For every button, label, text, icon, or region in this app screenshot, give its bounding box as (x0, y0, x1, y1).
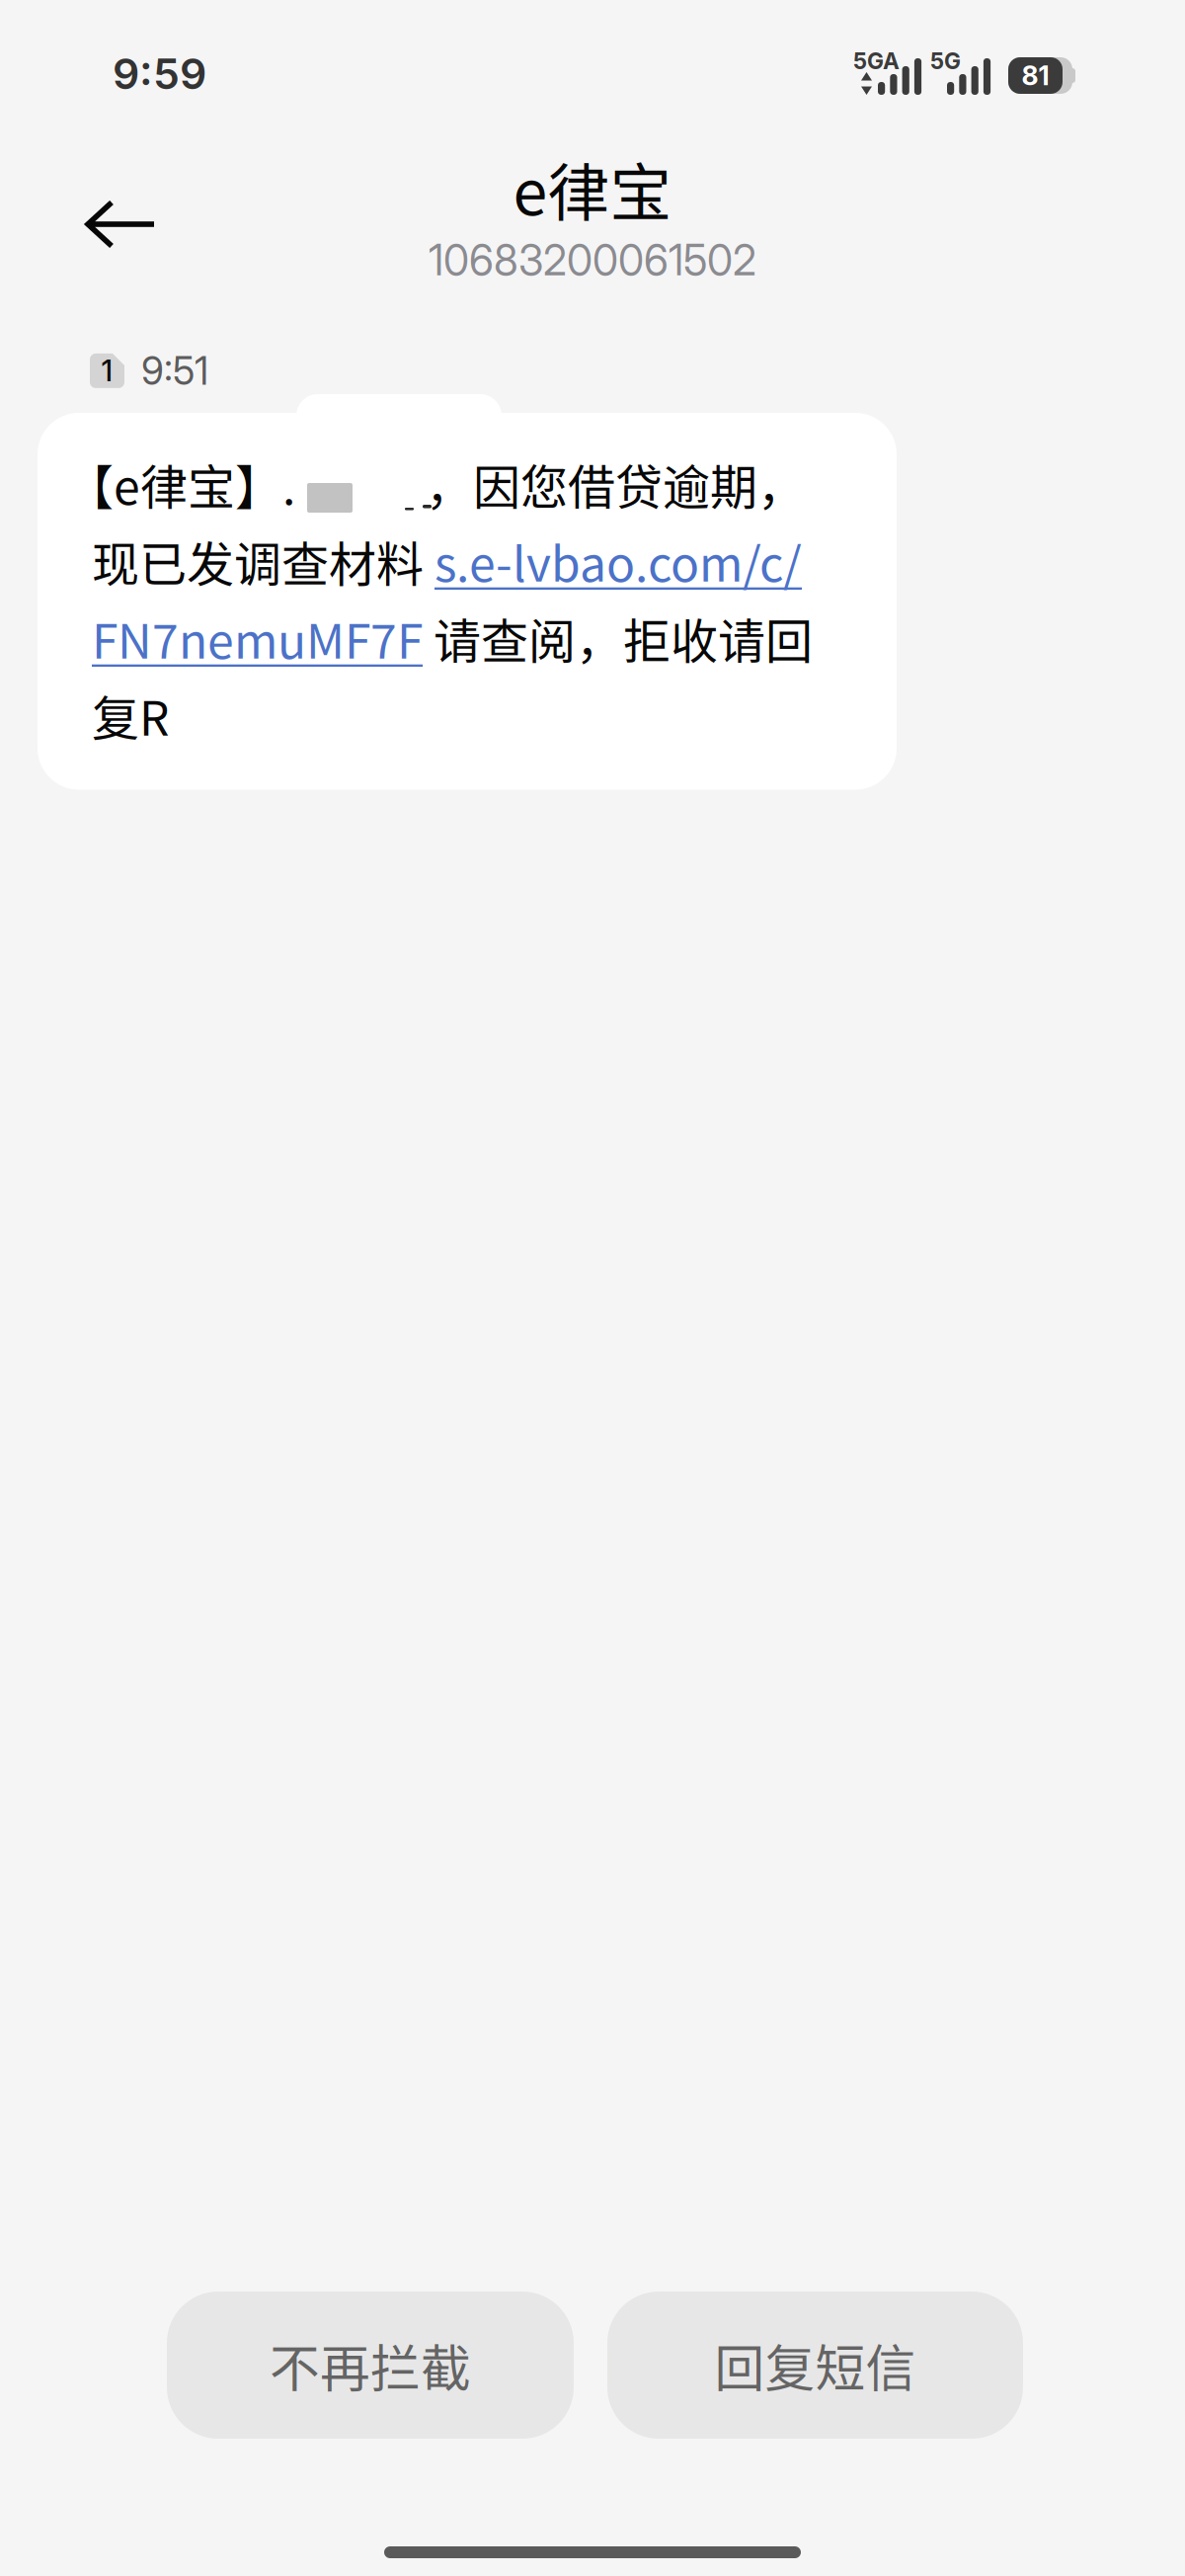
staticText: 不再拦截 (270, 2329, 471, 2401)
staticText: 1 (101, 353, 113, 388)
staticText: 9:51 (141, 348, 208, 394)
staticText: 5G (930, 47, 961, 74)
staticText: FN7nemuMF7F (92, 604, 423, 672)
staticText: 现已发调查材料 (92, 526, 434, 595)
button[interactable]: 不再拦截 (167, 2292, 574, 2439)
staticText: 5GA (853, 47, 900, 74)
staticText: 10683200061502 (429, 235, 756, 285)
staticText: s.e-lvbao.com/c/ (434, 526, 802, 595)
staticText: 复R (92, 681, 169, 749)
button[interactable]: 回复短信 (607, 2292, 1023, 2439)
staticText: 81 (1022, 60, 1049, 92)
staticText: 回复短信 (714, 2329, 916, 2401)
staticText: 9:59 (113, 48, 206, 99)
staticText: e律宝 (513, 143, 672, 233)
staticText: 【e律宝】. ，因您借贷逾期， (66, 449, 805, 518)
button[interactable]: Back (62, 170, 181, 279)
staticText: 请查阅，拒收请回 (423, 604, 813, 672)
